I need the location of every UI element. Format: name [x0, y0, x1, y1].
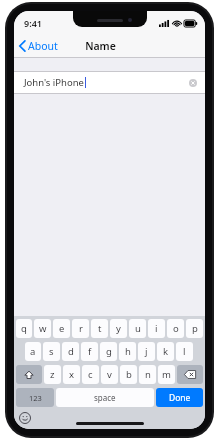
staticText: i: [155, 322, 158, 335]
button[interactable]: m: [158, 365, 175, 384]
staticText: y: [116, 322, 121, 335]
button[interactable]: x: [63, 365, 80, 384]
button[interactable]: f: [81, 342, 98, 361]
button[interactable]: a: [25, 342, 41, 361]
staticText: k: [163, 345, 169, 358]
button[interactable]: Backspace: [177, 365, 203, 384]
staticText: a: [30, 345, 36, 358]
staticText: o: [173, 322, 179, 335]
staticText: g: [106, 345, 112, 358]
staticText: 9:41: [24, 17, 42, 29]
staticText: n: [145, 368, 151, 381]
staticText: s: [49, 345, 54, 358]
button[interactable]: d: [62, 342, 79, 361]
button[interactable]: v: [101, 365, 118, 384]
staticText: b: [126, 368, 132, 381]
button[interactable]: w: [34, 319, 51, 338]
button[interactable]: n: [139, 365, 156, 384]
button[interactable]: 123: [16, 388, 54, 407]
staticText: r: [79, 322, 83, 335]
staticText: Name: [85, 39, 116, 53]
staticText: space: [94, 392, 116, 403]
button[interactable]: z: [44, 365, 61, 384]
staticText: h: [125, 345, 131, 358]
button[interactable]: k: [157, 342, 174, 361]
staticText: m: [162, 368, 171, 381]
button[interactable]: u: [129, 319, 146, 338]
staticText: x: [69, 368, 75, 381]
staticText: q: [21, 322, 27, 335]
staticText: l: [183, 345, 186, 358]
button[interactable]: John's iPhone: [14, 71, 205, 94]
staticText: Done: [169, 392, 191, 404]
button[interactable]: l: [176, 342, 193, 361]
staticText: d: [68, 345, 74, 358]
staticText: e: [59, 322, 65, 335]
staticText: 123: [29, 393, 42, 403]
button[interactable]: Emoji keyboard: [19, 412, 31, 424]
staticText: j: [145, 345, 148, 358]
staticText: t: [98, 322, 102, 335]
button[interactable]: j: [138, 342, 155, 361]
button[interactable]: r: [72, 319, 89, 338]
button[interactable]: Done: [156, 388, 203, 407]
staticText: p: [192, 322, 198, 335]
button[interactable]: q: [16, 319, 32, 338]
staticText: u: [135, 322, 141, 335]
button[interactable]: e: [53, 319, 70, 338]
staticText: w: [39, 322, 47, 335]
button[interactable]: About: [14, 33, 64, 58]
button[interactable]: b: [120, 365, 137, 384]
staticText: v: [107, 368, 112, 381]
button[interactable]: c: [82, 365, 99, 384]
button[interactable]: o: [167, 319, 184, 338]
staticText: About: [28, 39, 58, 53]
button[interactable]: t: [91, 319, 108, 338]
button[interactable]: Clear text: [189, 79, 197, 87]
staticText: f: [88, 345, 92, 358]
button[interactable]: i: [148, 319, 165, 338]
button[interactable]: h: [119, 342, 136, 361]
button[interactable]: space: [56, 388, 154, 407]
staticText: c: [88, 368, 93, 381]
button[interactable]: s: [43, 342, 60, 361]
staticText: z: [50, 368, 55, 381]
button[interactable]: g: [100, 342, 117, 361]
button[interactable]: p: [186, 319, 203, 338]
button[interactable]: Shift: [16, 365, 42, 384]
button[interactable]: y: [110, 319, 127, 338]
staticText: John's iPhone: [24, 76, 84, 89]
